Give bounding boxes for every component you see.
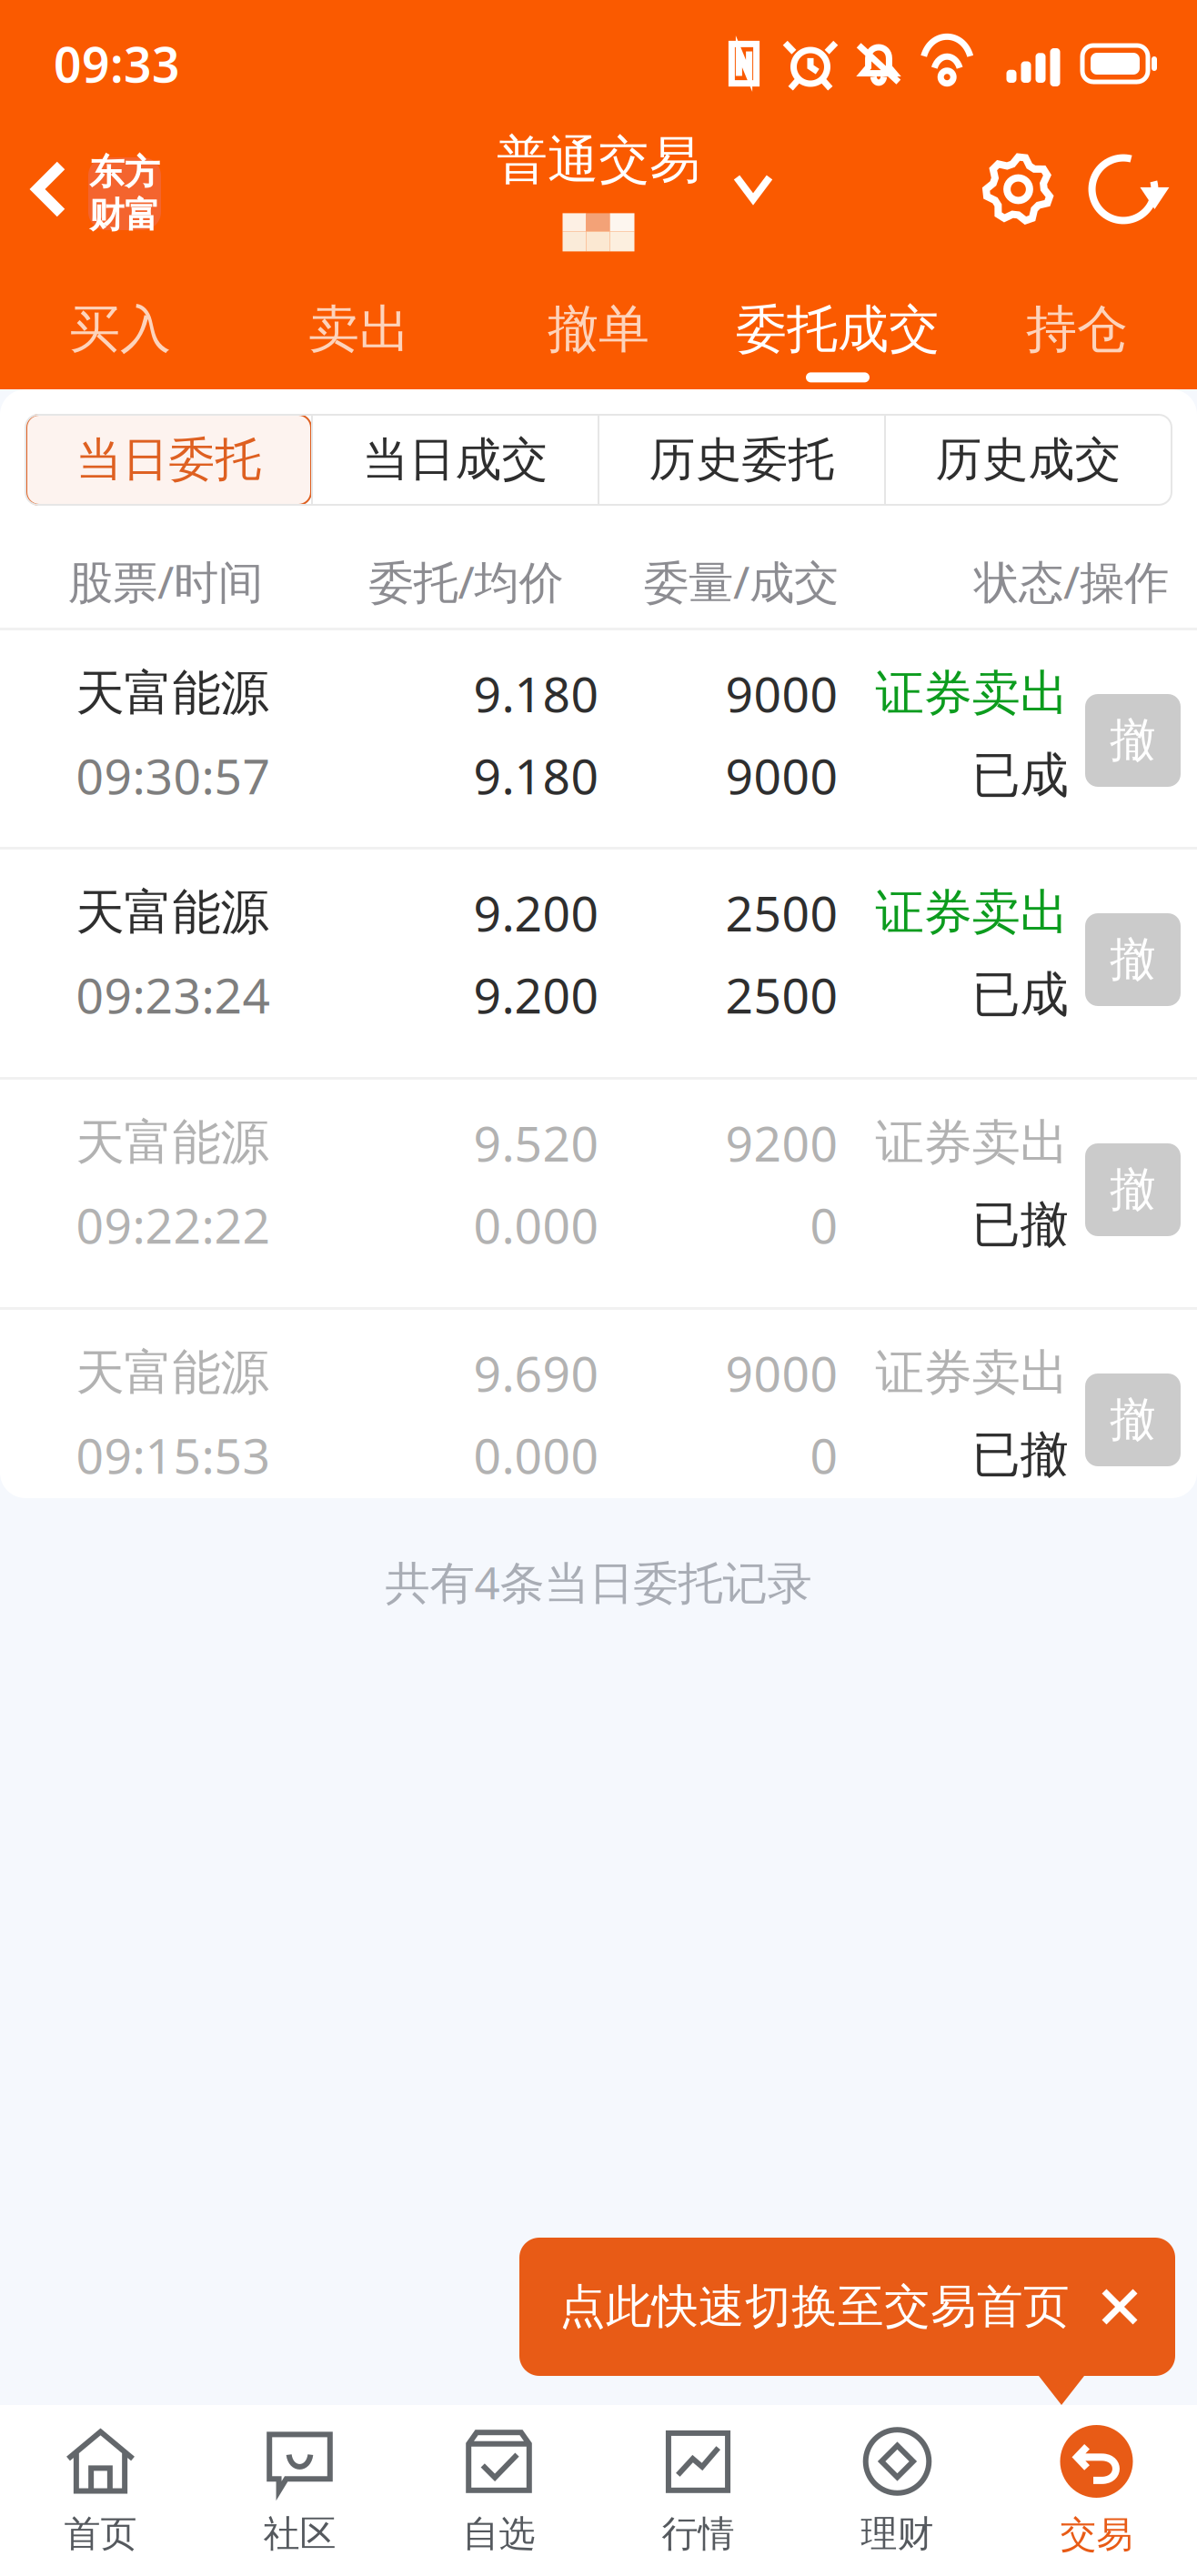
staticText: 当日委托 <box>76 432 262 488</box>
staticText: 当日成交 <box>362 432 548 488</box>
button[interactable]: 社区 <box>200 2405 399 2576</box>
button[interactable]: 刷新 <box>1075 130 1162 248</box>
staticText: 撤 <box>1110 1161 1156 1218</box>
staticText: 行情 <box>662 2511 734 2556</box>
staticText: 撤 <box>1110 931 1156 988</box>
button[interactable]: 天富能源 <box>0 630 1197 850</box>
button[interactable]: 自选 <box>399 2405 598 2576</box>
staticText: 状态/操作 <box>974 551 1169 611</box>
staticText: 股票/时间 <box>68 551 263 611</box>
staticText: 0.000 <box>473 1193 599 1257</box>
staticText: 共有4条当日委托记录 <box>385 1552 812 1612</box>
button[interactable]: 买入 <box>0 253 240 389</box>
staticText: 买入 <box>69 298 171 361</box>
button[interactable]: 历史委托 <box>599 415 884 505</box>
staticText: 0.000 <box>473 1423 599 1487</box>
staticText: 天富能源 <box>76 1343 269 1403</box>
staticText: 证券卖出 <box>875 1343 1068 1403</box>
button[interactable]: 返回 <box>0 134 88 245</box>
staticText: 已成 <box>972 965 1068 1024</box>
staticText: 委托/均价 <box>369 551 563 611</box>
button[interactable]: 理财 <box>798 2405 997 2576</box>
button[interactable]: 持仓 <box>957 253 1197 389</box>
staticText: 证券卖出 <box>875 883 1068 942</box>
staticText: 理财 <box>861 2511 934 2556</box>
staticText: 9000 <box>725 1341 838 1405</box>
staticText: 东方 财富 <box>89 151 160 237</box>
button[interactable]: 行情 <box>598 2405 798 2576</box>
staticText: 09:22:22 <box>76 1193 271 1257</box>
staticText: 历史委托 <box>649 432 835 488</box>
button[interactable]: 首页 <box>1 2405 200 2576</box>
staticText: 历史成交 <box>935 432 1121 488</box>
staticText: 9000 <box>725 661 838 726</box>
button[interactable]: 普通交易 <box>0 126 1197 253</box>
button[interactable]: 天富能源 <box>0 850 1197 1080</box>
staticText: 社区 <box>263 2511 336 2556</box>
button[interactable]: 撤单 <box>479 253 718 389</box>
staticText: 9.180 <box>473 743 599 808</box>
staticText: 撤单 <box>548 298 649 361</box>
staticText: 9000 <box>725 743 838 808</box>
staticText: 已撤 <box>972 1425 1068 1485</box>
staticText: 撤 <box>1110 1392 1156 1448</box>
staticText: 09:23:24 <box>76 963 271 1027</box>
staticText: 委托成交 <box>736 298 940 361</box>
staticText: 9200 <box>725 1110 838 1175</box>
staticText: 证券卖出 <box>875 1113 1068 1172</box>
staticText: 交易 <box>1060 2512 1133 2557</box>
staticText: 2500 <box>725 963 838 1027</box>
button[interactable]: 当日成交 <box>313 415 598 505</box>
staticText: 普通交易 <box>497 129 700 191</box>
staticText: 首页 <box>64 2511 137 2556</box>
staticText: 0 <box>810 1423 838 1487</box>
staticText: 已撤 <box>972 1195 1068 1255</box>
staticText: 09:30:57 <box>76 743 271 808</box>
button[interactable]: 天富能源 <box>0 1310 1197 1498</box>
staticText: 证券卖出 <box>875 663 1068 723</box>
staticText: 9.180 <box>473 661 599 726</box>
staticText: 2500 <box>725 880 838 945</box>
staticText: 9.200 <box>473 963 599 1027</box>
button[interactable]: 天富能源 <box>0 1080 1197 1310</box>
staticText: 委量/成交 <box>644 551 839 611</box>
staticText: 天富能源 <box>76 1113 269 1172</box>
staticText: 09:15:53 <box>76 1423 271 1487</box>
staticText: 天富能源 <box>76 883 269 942</box>
button[interactable]: 当日委托 <box>26 415 311 505</box>
staticText: 0 <box>810 1193 838 1257</box>
staticText: 天富能源 <box>76 663 269 723</box>
staticText: 9.690 <box>473 1341 599 1405</box>
staticText: 持仓 <box>1026 298 1128 361</box>
staticText: 卖出 <box>308 298 410 361</box>
staticText: 9.200 <box>473 880 599 945</box>
button[interactable]: 历史成交 <box>886 415 1171 505</box>
button[interactable]: 卖出 <box>240 253 479 389</box>
staticText: 9.520 <box>473 1110 599 1175</box>
staticText: 自选 <box>463 2511 535 2556</box>
staticText: 撤 <box>1110 712 1156 769</box>
button[interactable]: 交易 <box>997 2405 1196 2576</box>
button[interactable]: 点此快速切换至交易首页 <box>519 2238 1175 2376</box>
staticText: 09:33 <box>54 31 180 96</box>
button[interactable]: 委托成交 <box>718 253 957 389</box>
staticText: 点此快速切换至交易首页 <box>559 2278 1070 2335</box>
staticText: 已成 <box>972 746 1068 805</box>
button[interactable]: 设置 <box>945 132 1075 246</box>
